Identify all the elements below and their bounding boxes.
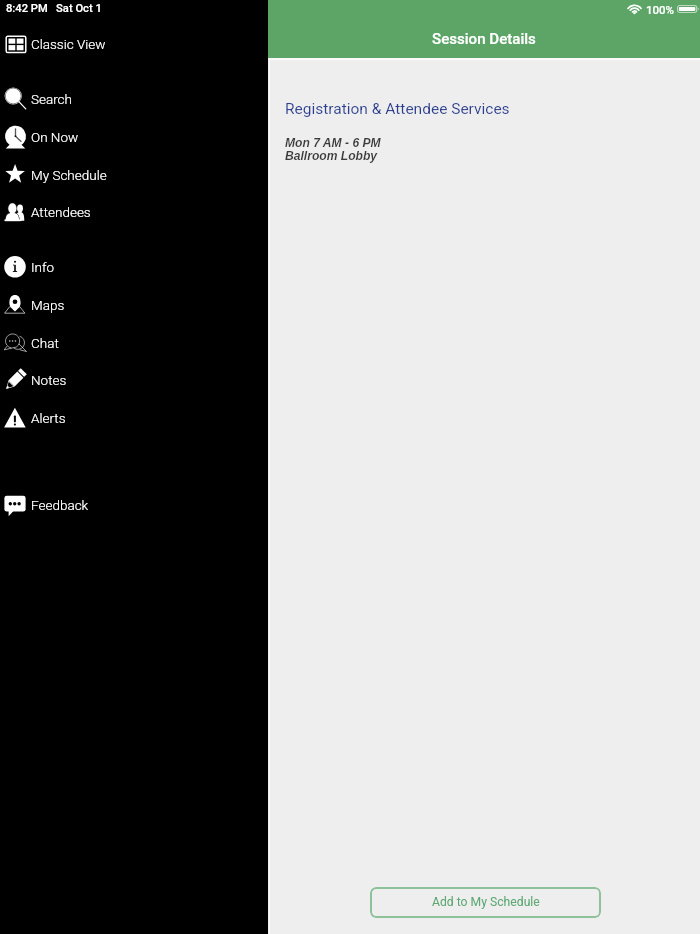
staticText: Registration & Attendee Services: [285, 100, 510, 118]
staticText: Chat: [31, 335, 59, 351]
button[interactable]: Maps: [0, 286, 268, 324]
staticText: Feedback: [31, 497, 89, 513]
button[interactable]: Info: [0, 248, 268, 286]
button[interactable]: Chat: [0, 324, 268, 362]
staticText: Ballroom Lobby: [285, 149, 378, 163]
button[interactable]: Add to My Schedule: [370, 887, 601, 918]
staticText: On Now: [31, 129, 79, 145]
staticText: 8:42 PM Sat Oct 1: [6, 2, 102, 15]
staticText: Notes: [31, 372, 67, 388]
staticText: My Schedule: [31, 167, 107, 183]
button[interactable]: My Schedule: [0, 156, 268, 194]
button[interactable]: On Now: [0, 118, 268, 156]
staticText: Alerts: [31, 410, 66, 426]
staticText: Maps: [31, 297, 65, 313]
button[interactable]: Feedback: [0, 486, 268, 524]
button[interactable]: Alerts: [0, 399, 268, 437]
staticText: Attendees: [31, 204, 91, 220]
staticText: Mon 7 AM - 6 PM: [285, 136, 381, 150]
staticText: Session Details: [432, 30, 536, 48]
staticText: Classic View: [31, 36, 106, 52]
button[interactable]: Search: [0, 80, 268, 118]
button[interactable]: Attendees: [0, 193, 268, 231]
staticText: Info: [31, 259, 55, 275]
button[interactable]: Notes: [0, 361, 268, 399]
staticText: Search: [31, 91, 72, 107]
button[interactable]: Classic View: [0, 25, 268, 63]
staticText: 100%: [646, 3, 675, 16]
staticText: Add to My Schedule: [432, 895, 540, 909]
